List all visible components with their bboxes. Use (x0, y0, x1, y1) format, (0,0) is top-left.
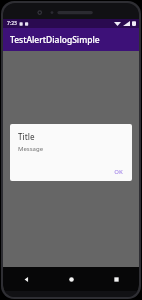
button[interactable]: Home (49, 267, 94, 291)
staticText: OK (114, 168, 123, 176)
staticText: Title (18, 131, 35, 142)
staticText: 7:23 (7, 20, 17, 27)
button[interactable]: Back (3, 267, 49, 291)
staticText: Message (18, 145, 44, 153)
button[interactable]: Recent apps (94, 267, 139, 291)
staticText: TestAlertDialogSimple (10, 34, 100, 46)
button[interactable]: OK (111, 167, 126, 177)
